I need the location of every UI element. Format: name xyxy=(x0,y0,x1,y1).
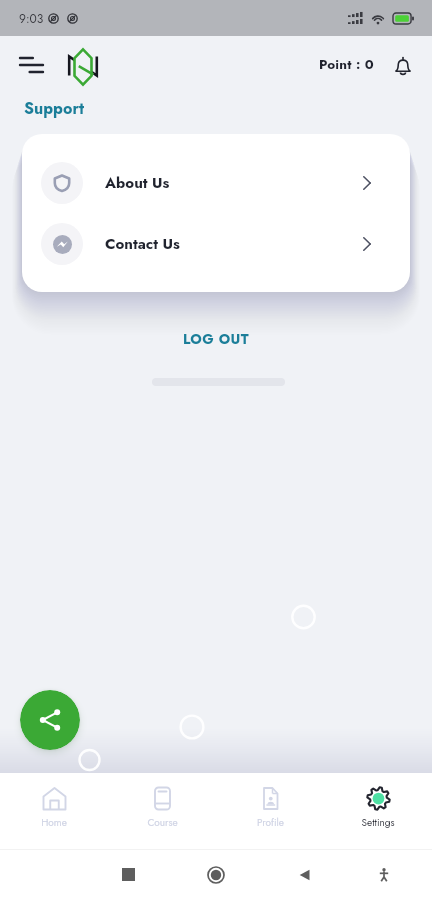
button[interactable]: LOG OUT xyxy=(169,323,264,355)
button[interactable]: Settings xyxy=(324,773,432,849)
staticText: LOG OUT xyxy=(183,329,250,349)
staticText: Point : 0 xyxy=(319,55,374,75)
button[interactable]: Contact Us xyxy=(22,213,410,274)
button[interactable]: Course xyxy=(108,773,216,849)
staticText: Profile xyxy=(257,815,284,829)
staticText: Settings xyxy=(361,815,395,829)
button[interactable]: Notifications xyxy=(390,53,416,79)
button[interactable]: Share xyxy=(20,690,80,750)
staticText: Support xyxy=(24,97,85,120)
staticText: About Us xyxy=(105,172,170,194)
staticText: Course xyxy=(147,815,178,829)
button[interactable]: About Us xyxy=(22,152,410,213)
staticText: 9:03 xyxy=(19,10,44,27)
button[interactable]: Menu xyxy=(20,51,48,79)
staticText: Home xyxy=(41,815,67,829)
button[interactable]: Home xyxy=(0,773,108,849)
button[interactable]: Profile xyxy=(216,773,324,849)
staticText: Contact Us xyxy=(105,233,180,255)
